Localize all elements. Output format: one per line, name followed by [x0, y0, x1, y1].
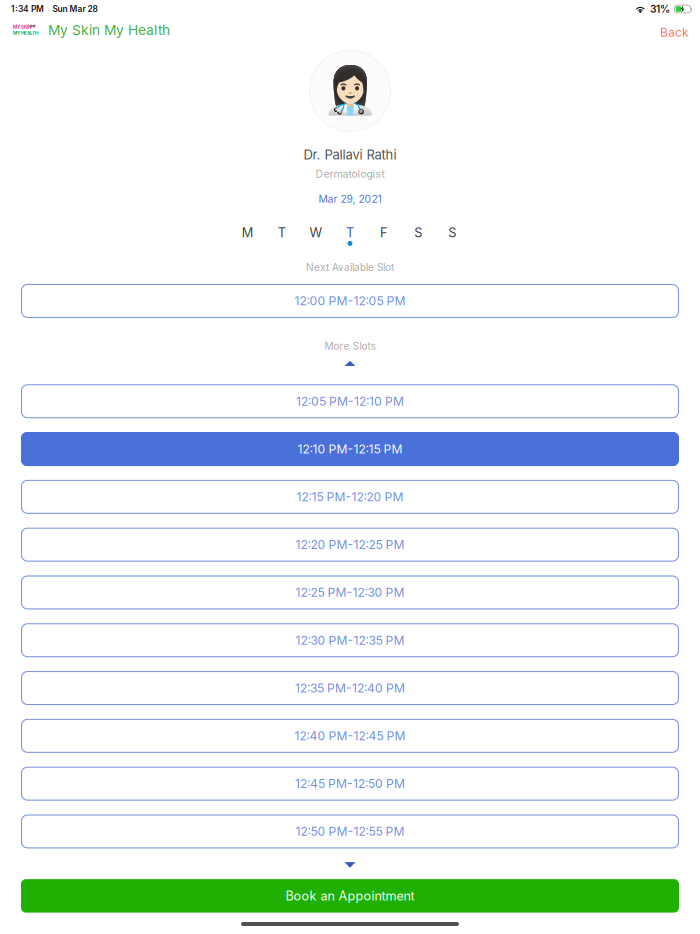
staticText: 12:00 PM-12:05 PM [294, 294, 405, 308]
staticText: W [309, 225, 322, 240]
staticText: 12:45 PM-12:50 PM [295, 776, 405, 791]
staticText: S [448, 225, 456, 240]
staticText: 1:34 PM [11, 4, 44, 14]
staticText: Sun Mar 28 [52, 4, 97, 14]
button[interactable]: 12:00 PM-12:05 PM [21, 284, 679, 318]
button[interactable]: 12:40 PM-12:45 PM [21, 719, 679, 753]
staticText: 12:25 PM-12:30 PM [295, 585, 404, 600]
button[interactable]: 12:10 PM-12:15 PM [21, 432, 679, 466]
staticText: Book an Appointment [285, 888, 414, 903]
button[interactable]: T [265, 226, 299, 246]
button[interactable]: 12:25 PM-12:30 PM [21, 575, 679, 609]
button[interactable]: Show more slots [344, 862, 355, 868]
staticText: 12:15 PM-12:20 PM [296, 489, 403, 504]
button[interactable]: W [299, 226, 333, 246]
button[interactable]: 12:05 PM-12:10 PM [21, 384, 679, 418]
button[interactable]: 12:30 PM-12:35 PM [21, 623, 679, 657]
staticText: 12:05 PM-12:10 PM [296, 394, 404, 409]
staticText: 12:40 PM-12:45 PM [294, 728, 405, 743]
button[interactable]: F [367, 226, 401, 246]
staticText: 12:10 PM-12:15 PM [297, 442, 402, 456]
button[interactable]: 12:20 PM-12:25 PM [21, 528, 679, 562]
staticText: 12:35 PM-12:40 PM [295, 681, 405, 695]
button[interactable]: Show fewer slots [344, 361, 355, 366]
button[interactable]: S [401, 226, 435, 246]
staticText: T [346, 225, 354, 240]
staticText: My Skin My Health [48, 22, 170, 38]
staticText: 31% [650, 3, 670, 15]
button[interactable]: 12:50 PM-12:55 PM [21, 814, 679, 848]
button[interactable]: T [333, 226, 367, 246]
button[interactable]: M [231, 226, 265, 246]
button[interactable]: 12:45 PM-12:50 PM [21, 767, 679, 801]
staticText: 👩🏻‍⚕️ [322, 64, 378, 117]
button[interactable]: S [435, 226, 469, 246]
button[interactable]: 12:35 PM-12:40 PM [21, 671, 679, 705]
button[interactable]: Book an Appointment [21, 879, 679, 913]
staticText: MY HEALTH [13, 30, 38, 36]
button[interactable]: 12:15 PM-12:20 PM [21, 480, 679, 514]
staticText: T [278, 225, 286, 240]
staticText: Mar 29, 2021 [318, 192, 381, 205]
staticText: More Slots [324, 340, 375, 352]
staticText: Back [660, 25, 689, 40]
staticText: Next Available Slot [306, 261, 394, 273]
staticText: 12:30 PM-12:35 PM [295, 633, 404, 648]
staticText: MY SKIN [13, 24, 32, 30]
staticText: 12:50 PM-12:55 PM [295, 824, 404, 839]
staticText: F [380, 225, 388, 240]
staticText: Dermatologist [315, 167, 384, 180]
staticText: S [414, 225, 422, 240]
staticText: Dr. Pallavi Rathi [303, 147, 396, 163]
staticText: M [242, 225, 254, 240]
staticText: 12:20 PM-12:25 PM [295, 537, 404, 552]
button[interactable]: Back [654, 17, 695, 43]
